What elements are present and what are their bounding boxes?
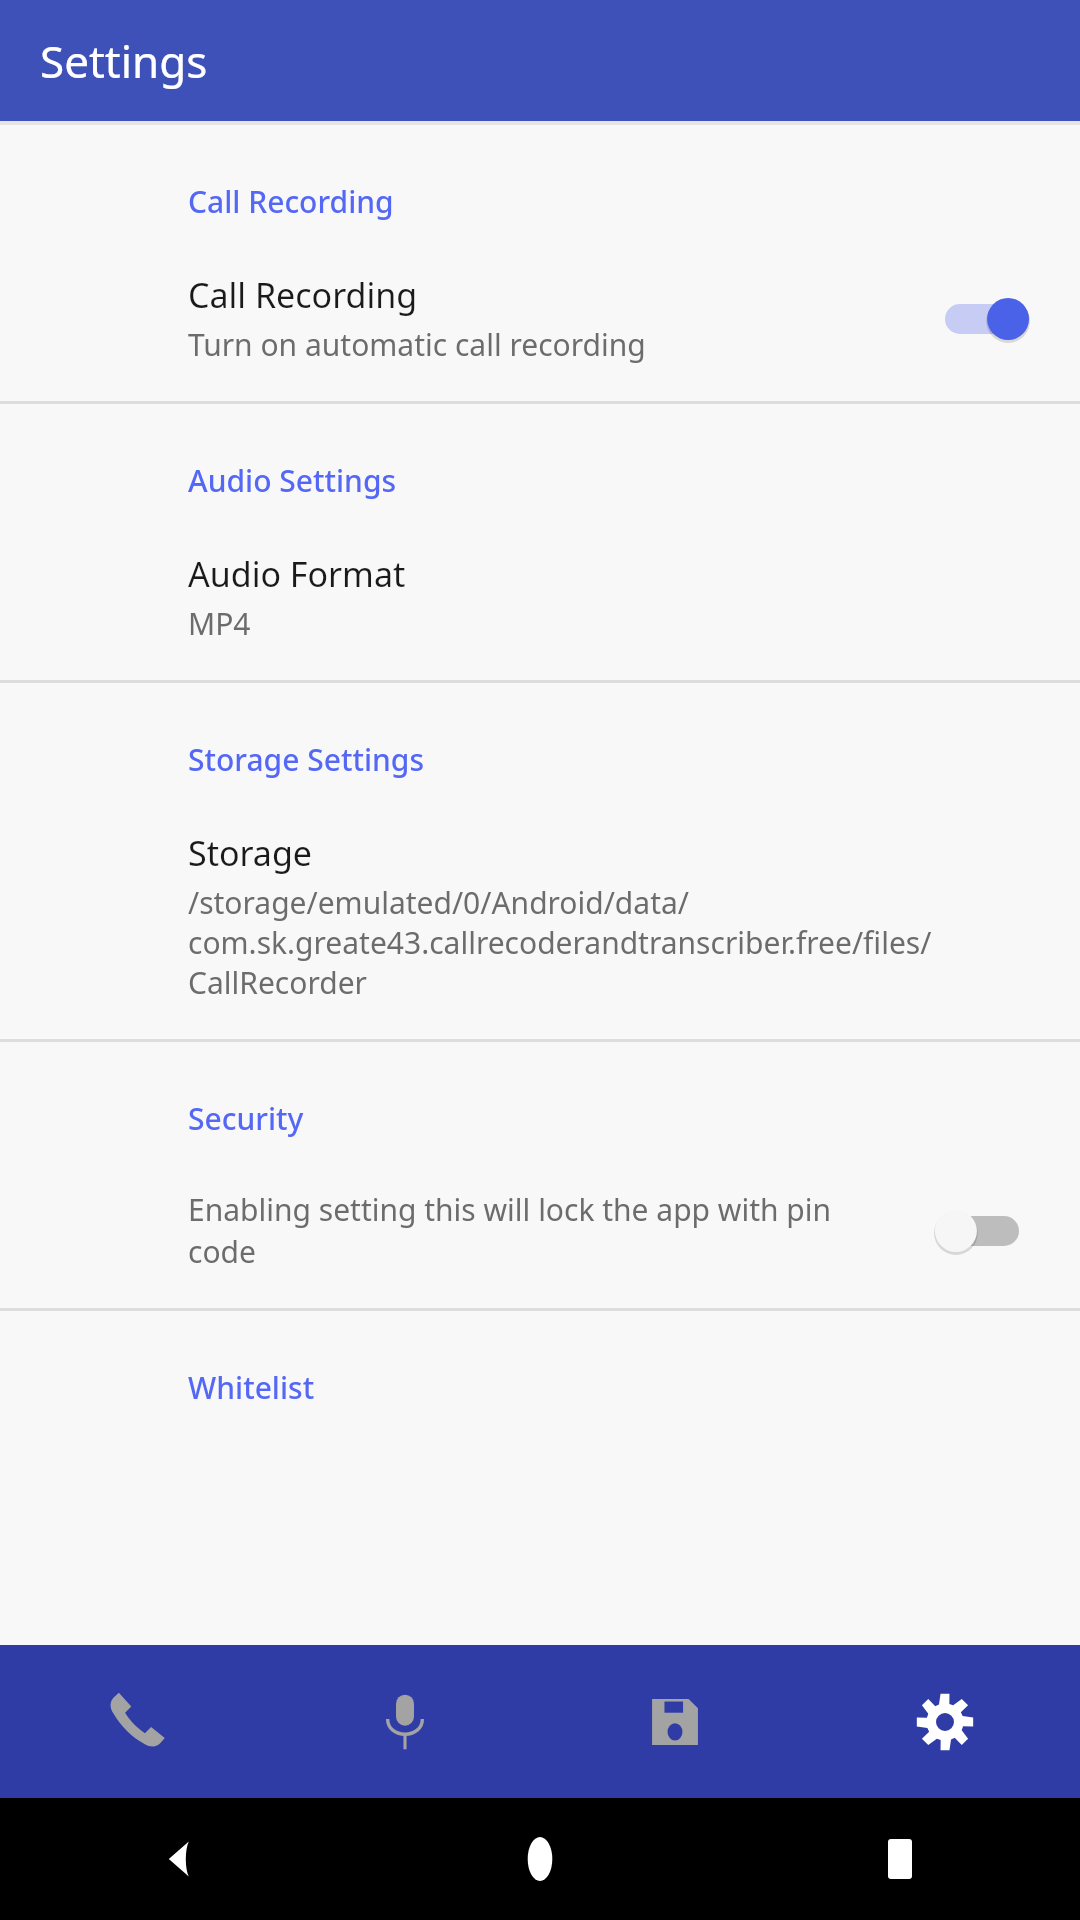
staticText: Security <box>188 1098 304 1139</box>
button[interactable]: Call Recording <box>0 228 1080 401</box>
staticText: MP4 <box>188 603 251 644</box>
button[interactable]: Toggle on <box>934 289 1030 349</box>
staticText: Call Recording <box>188 272 418 318</box>
staticText: Audio Format <box>188 551 406 597</box>
button[interactable]: Toggle off <box>934 1201 1030 1261</box>
button[interactable]: Settings <box>810 1645 1080 1798</box>
button[interactable]: Audio Format <box>0 507 1080 680</box>
button[interactable]: Storage <box>0 786 1080 1039</box>
button[interactable]: Saved <box>540 1645 810 1798</box>
staticText: Audio Settings <box>188 460 397 501</box>
staticText: Enabling setting this will lock the app … <box>188 1189 898 1272</box>
button[interactable]: Home <box>517 1836 563 1882</box>
staticText: Storage Settings <box>188 739 424 780</box>
staticText: Storage <box>188 830 313 876</box>
button[interactable]: Enabling setting this will lock the app … <box>0 1145 1080 1308</box>
staticText: Turn on automatic call recording <box>188 324 646 365</box>
button[interactable]: Recordings <box>270 1645 540 1798</box>
staticText: Settings <box>40 31 208 91</box>
button[interactable]: Recent apps <box>877 1836 923 1882</box>
button[interactable]: Calls <box>0 1645 270 1798</box>
staticText: /storage/emulated/0/Android/data/com.sk.… <box>188 882 1020 1003</box>
staticText: Call Recording <box>188 181 394 222</box>
button[interactable]: Back <box>157 1836 203 1882</box>
staticText: Whitelist <box>188 1367 315 1408</box>
